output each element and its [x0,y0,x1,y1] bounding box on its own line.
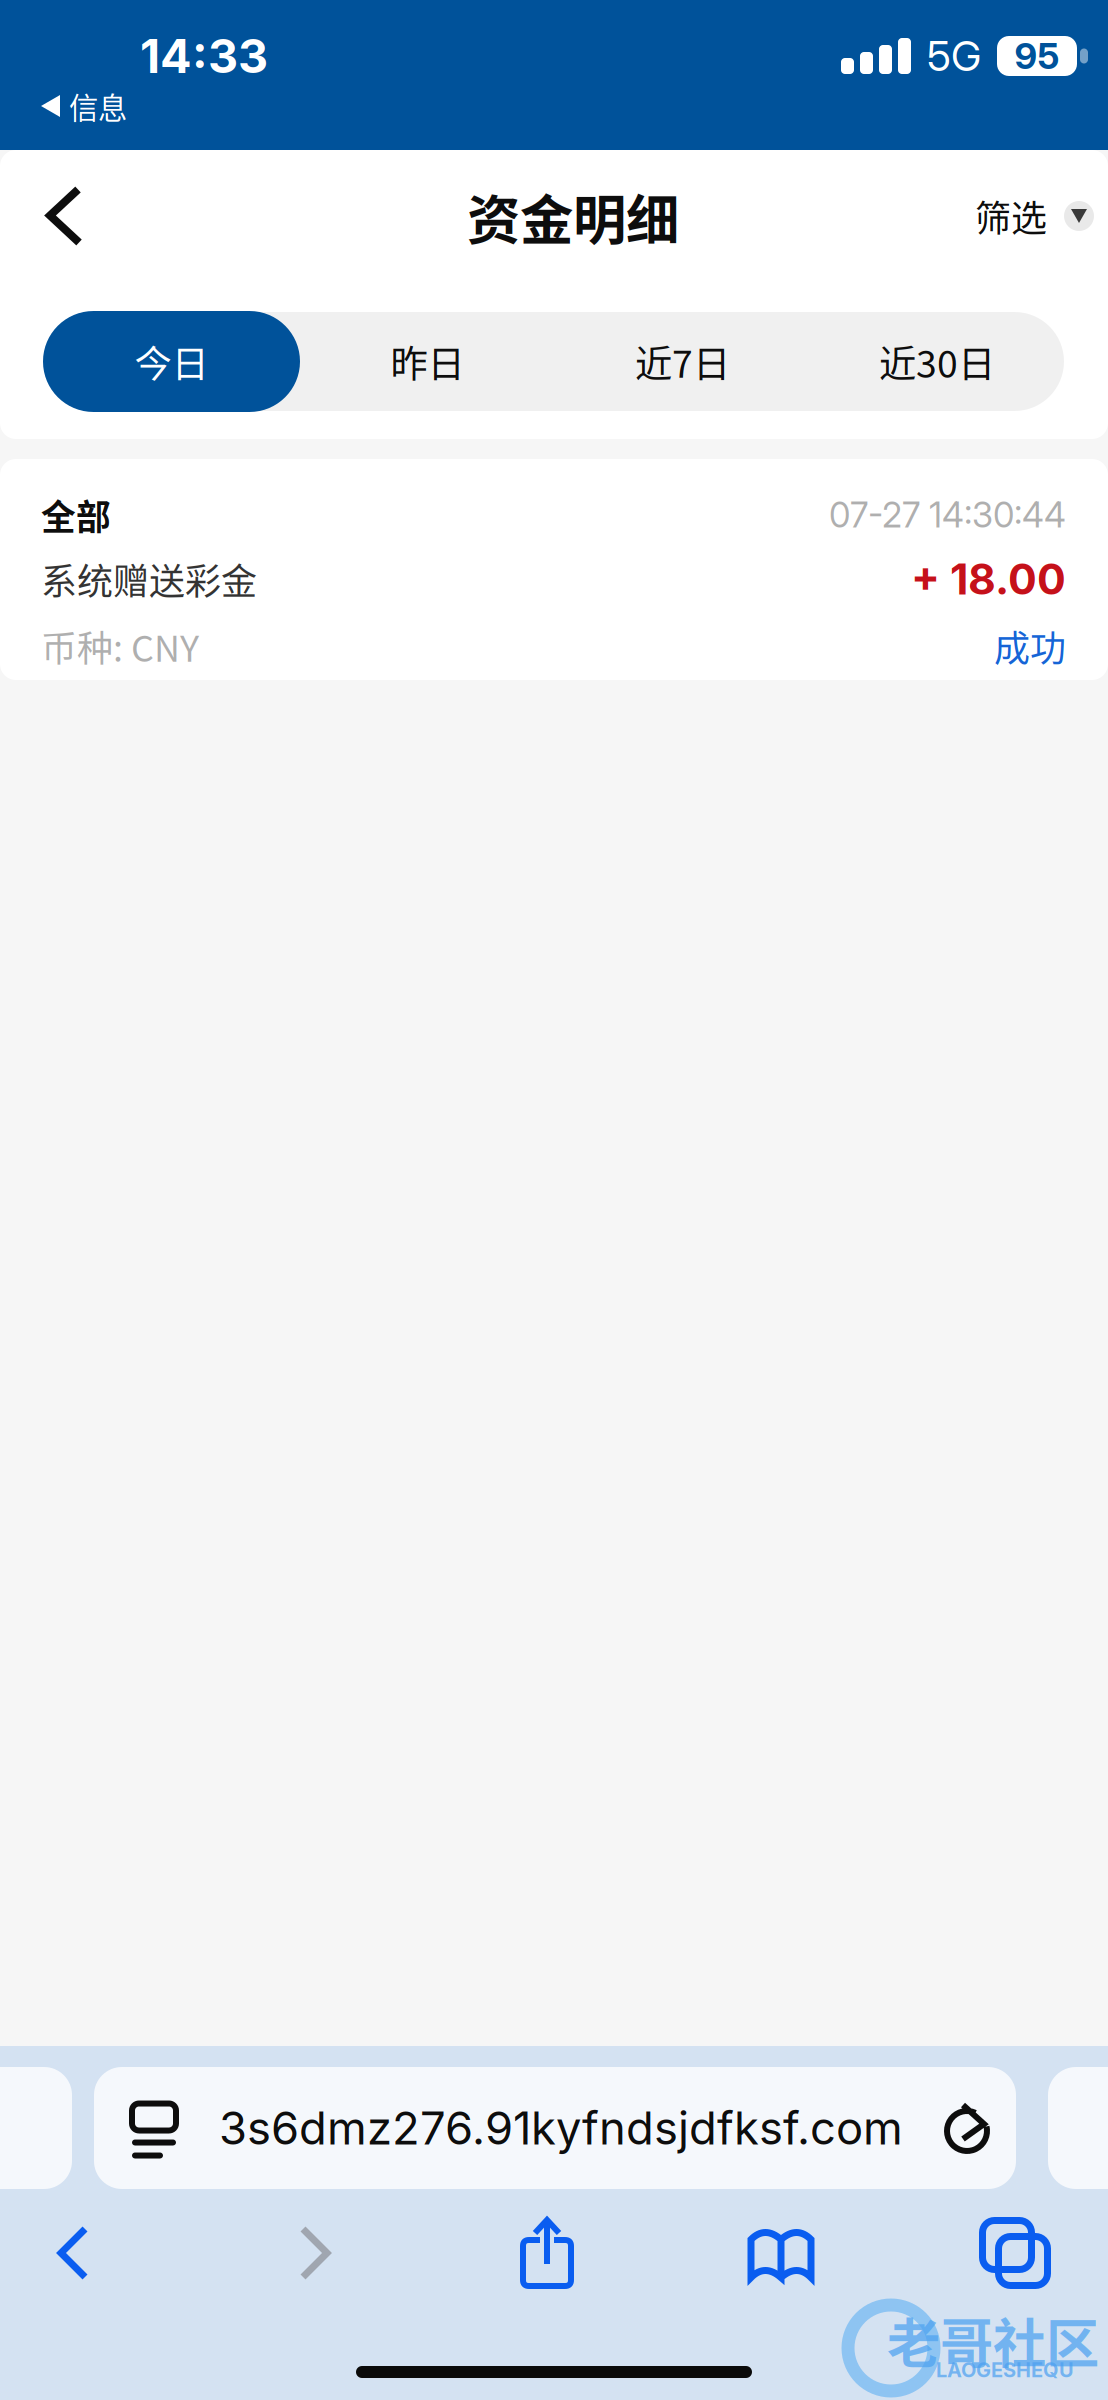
staticText: 成功 [994,620,1066,672]
staticText: 3s6dmz276.91kyfndsjdfksf.com [219,2101,903,2155]
staticText: 95 [1014,34,1059,78]
button[interactable]: 3s6dmz276.91kyfndsjdfksf.com [94,2067,1016,2189]
button[interactable]: Bookmarks [708,2203,854,2303]
button[interactable]: Share [474,2203,620,2303]
button[interactable]: 全部 [0,459,1108,680]
button[interactable]: Tabs [942,2203,1088,2303]
staticText: 近30日 [879,334,995,389]
button[interactable]: 近30日 [810,312,1064,411]
button[interactable]: Back [0,168,160,264]
staticText: 昨日 [390,334,464,389]
button[interactable]: 昨日 [300,312,555,411]
button[interactable]: 信息 [0,86,260,126]
staticText: 今日 [134,334,208,389]
staticText: 系统赠送彩金 [41,553,257,605]
staticText: 14:33 [140,28,268,84]
staticText: 老哥社区 [887,2301,1099,2379]
staticText: 5G [927,31,981,81]
button[interactable]: Forward [242,2203,388,2303]
staticText: 筛选 [975,190,1047,242]
staticText: 全部 [41,490,111,540]
staticText: + 18.00 [911,553,1066,605]
staticText: 信息 [69,85,127,127]
staticText: 07-27 14:30:44 [829,494,1066,536]
staticText: 资金明细 [467,178,679,255]
button[interactable]: 今日 [43,311,300,412]
button[interactable]: Back [0,2203,146,2303]
staticText: 近7日 [635,334,730,389]
button[interactable]: 近7日 [555,312,810,411]
button[interactable]: 筛选 [975,168,1094,264]
staticText: 币种: CNY [41,620,199,672]
staticText: LAOGESHEQU [936,2358,1074,2382]
